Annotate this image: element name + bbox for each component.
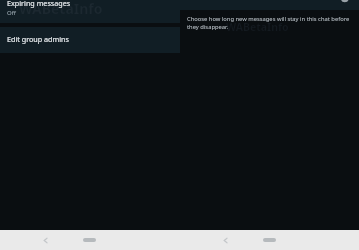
staticText: Off xyxy=(7,9,16,17)
button[interactable]: Back xyxy=(39,234,52,247)
staticText: Expiring messages xyxy=(7,0,71,8)
staticText: Choose how long new messages will stay i… xyxy=(187,15,359,31)
button[interactable]: Home xyxy=(263,238,276,242)
staticText: Edit group admins xyxy=(7,34,69,44)
button[interactable]: Home xyxy=(83,238,96,242)
button[interactable]: Edit group admins xyxy=(0,27,180,53)
staticText: WABetaInfo xyxy=(226,20,289,34)
button[interactable]: Back xyxy=(219,234,232,247)
staticText: WABetaInfo xyxy=(19,0,103,18)
button[interactable]: Expiring messages xyxy=(0,0,180,23)
